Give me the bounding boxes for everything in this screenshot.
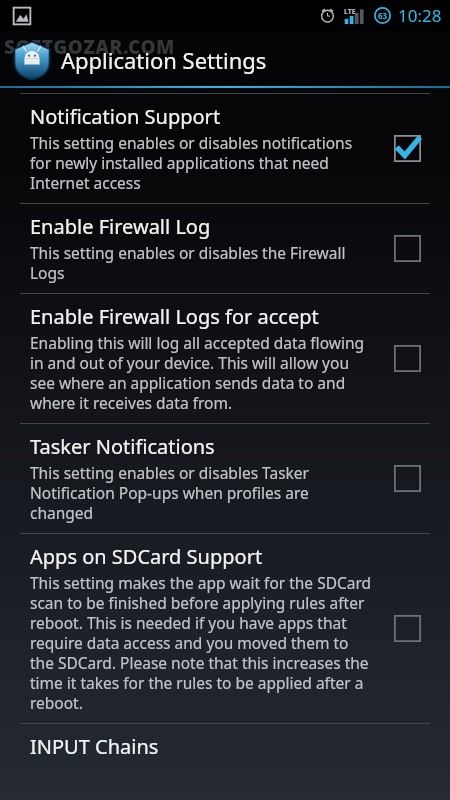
button[interactable]: Notification Support toggle bbox=[384, 125, 430, 171]
staticText: 63 bbox=[378, 10, 388, 21]
button[interactable]: Enable Firewall Log bbox=[0, 204, 450, 293]
staticText: This setting enables or disables Tasker … bbox=[30, 462, 372, 523]
staticText: 10:28 bbox=[398, 4, 442, 27]
button[interactable]: Tasker Notifications bbox=[0, 424, 450, 533]
staticText: INPUT Chains bbox=[30, 733, 159, 760]
button[interactable]: Enable Firewall Logs for accept bbox=[0, 294, 450, 423]
button[interactable]: Tasker Notifications toggle bbox=[384, 455, 430, 501]
staticText: Enable Firewall Logs for accept bbox=[30, 303, 319, 330]
button[interactable]: Notification Support bbox=[0, 94, 450, 203]
staticText: SOFTGOZAR.COM bbox=[4, 34, 175, 60]
staticText: Enabling this will log all accepted data… bbox=[30, 332, 372, 413]
staticText: This setting makes the app wait for the … bbox=[30, 572, 372, 713]
staticText: Notification Support bbox=[30, 103, 221, 130]
button[interactable]: Apps on SDCard Support bbox=[0, 534, 450, 723]
button[interactable]: Apps on SDCard Support toggle bbox=[384, 605, 430, 651]
button[interactable]: INPUT Chains bbox=[0, 724, 450, 760]
staticText: Tasker Notifications bbox=[30, 433, 215, 460]
staticText: Application Settings bbox=[61, 45, 267, 75]
staticText: LTE bbox=[344, 7, 356, 17]
staticText: Enable Firewall Log bbox=[30, 213, 211, 240]
button[interactable]: Enable Firewall Log toggle bbox=[384, 225, 430, 271]
staticText: This setting enables or disables the Fir… bbox=[30, 242, 372, 283]
staticText: Apps on SDCard Support bbox=[30, 543, 263, 570]
button[interactable]: Enable Firewall Logs for accept toggle bbox=[384, 335, 430, 381]
staticText: This setting enables or disables notific… bbox=[30, 132, 372, 193]
